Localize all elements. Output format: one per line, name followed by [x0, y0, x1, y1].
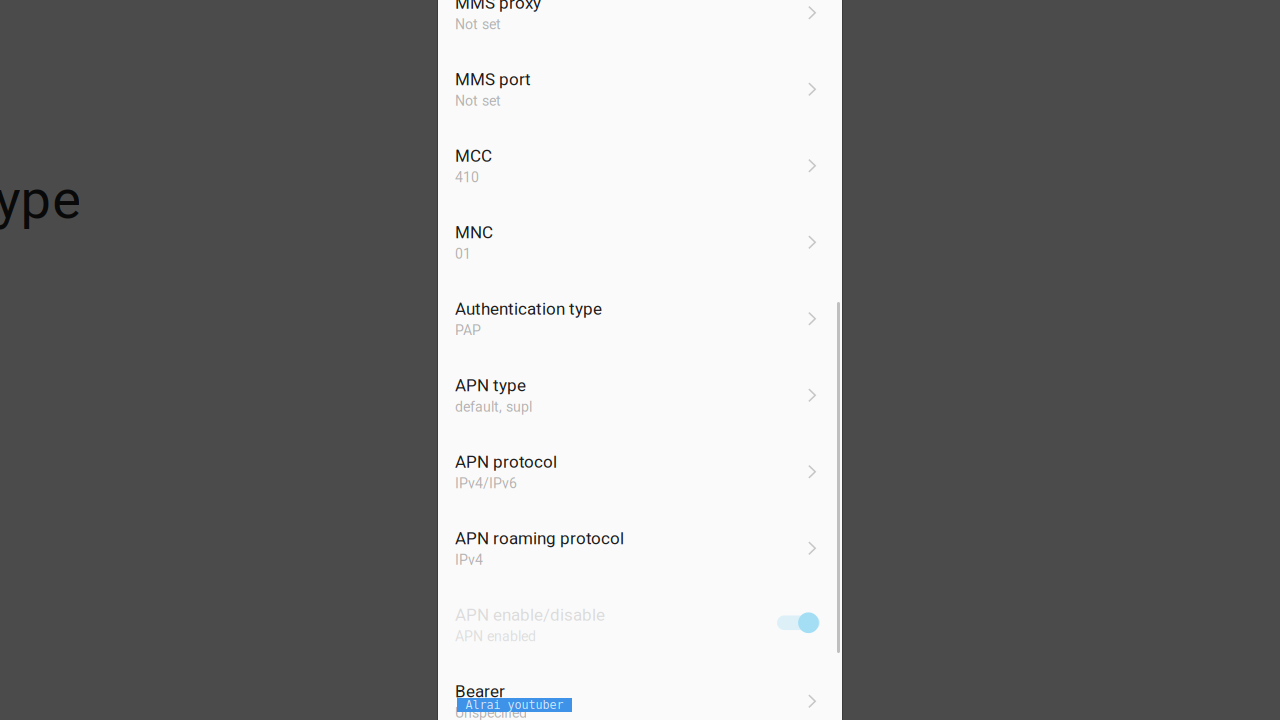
staticText: Authentication type — [455, 299, 602, 319]
button[interactable]: APN enable/disable — [438, 586, 842, 663]
button[interactable]: Authentication type — [438, 280, 842, 357]
staticText: APN protocol — [455, 452, 557, 472]
staticText: APN type — [455, 375, 526, 395]
button[interactable]: MNC — [438, 204, 842, 280]
button[interactable]: Bearer — [438, 663, 842, 720]
staticText: IPv4/IPv6 — [455, 475, 517, 492]
staticText: MMS proxy — [455, 0, 541, 13]
staticText: Bearer — [455, 681, 505, 701]
staticText: 01 — [455, 246, 471, 262]
staticText: APN enable/disable — [455, 605, 605, 625]
button[interactable]: MMS port — [438, 51, 842, 127]
button[interactable]: APN type — [438, 357, 842, 433]
staticText: Alrai youtuber — [465, 698, 563, 712]
staticText: MCC — [455, 146, 492, 166]
staticText: default, supl — [455, 399, 532, 415]
staticText: 410 — [455, 169, 479, 186]
staticText: APN roaming protocol — [455, 528, 624, 548]
staticText: MMS port — [455, 69, 531, 89]
button[interactable]: MMS proxy — [438, 0, 842, 51]
staticText: APN enabled — [455, 628, 536, 645]
button[interactable]: MCC — [438, 127, 842, 204]
button[interactable]: APN roaming protocol — [438, 510, 842, 586]
staticText: Unspecified — [455, 705, 527, 720]
staticText: Not set — [455, 93, 501, 109]
staticText: PAP — [455, 322, 481, 339]
staticText: MNC — [455, 222, 493, 242]
staticText: IPv4 — [455, 552, 483, 568]
staticText: Not set — [455, 16, 501, 33]
button[interactable]: APN protocol — [438, 433, 842, 510]
